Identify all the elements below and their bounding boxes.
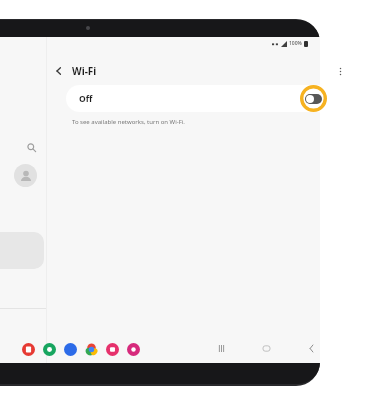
staticText: 100%: [289, 40, 302, 47]
button[interactable]: YouTube: [106, 343, 119, 356]
button[interactable]: Chrome: [85, 343, 98, 356]
button[interactable]: Gallery: [22, 343, 35, 356]
staticText: Off: [79, 93, 93, 105]
button[interactable]: Turn Wi-Fi on: [300, 85, 327, 112]
button[interactable]: Back: [48, 60, 70, 82]
button[interactable]: Off: [66, 85, 332, 112]
button[interactable]: Settings: [127, 343, 140, 356]
button[interactable]: Search: [22, 138, 40, 156]
button[interactable]: Home: [258, 340, 274, 356]
button[interactable]: Phone: [43, 343, 56, 356]
button[interactable]: More options: [330, 61, 350, 81]
staticText: Wi-Fi: [72, 64, 97, 78]
button[interactable]: Back: [303, 340, 319, 356]
button[interactable]: Messages: [64, 343, 77, 356]
staticText: To see available networks, turn on Wi-Fi…: [72, 118, 185, 126]
button[interactable]: Recents: [213, 340, 229, 356]
button[interactable]: Account: [14, 164, 37, 187]
